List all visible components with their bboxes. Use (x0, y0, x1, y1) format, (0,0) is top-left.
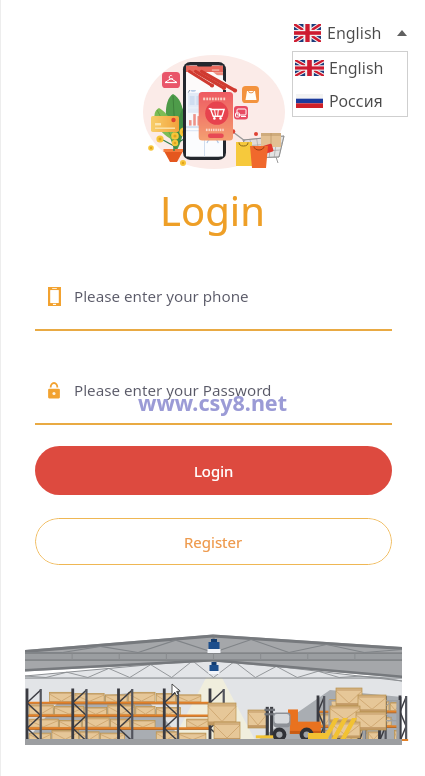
button[interactable]: Россия (292, 84, 408, 117)
other: Collapse language menu (397, 30, 407, 36)
staticText: Please enter your Password (74, 380, 272, 401)
button[interactable]: English (294, 21, 407, 45)
button[interactable]: Register (35, 518, 392, 565)
staticText: English (329, 57, 384, 79)
staticText: Please enter your phone (74, 286, 249, 307)
staticText: English (327, 22, 382, 44)
staticText: Россия (329, 90, 383, 112)
staticText: Login (0, 183, 425, 237)
staticText: Login (194, 461, 234, 481)
staticText: www.csy8.net (138, 388, 288, 417)
button[interactable]: English (292, 51, 408, 84)
staticText: Register (184, 532, 243, 552)
button[interactable]: Login (35, 446, 392, 495)
